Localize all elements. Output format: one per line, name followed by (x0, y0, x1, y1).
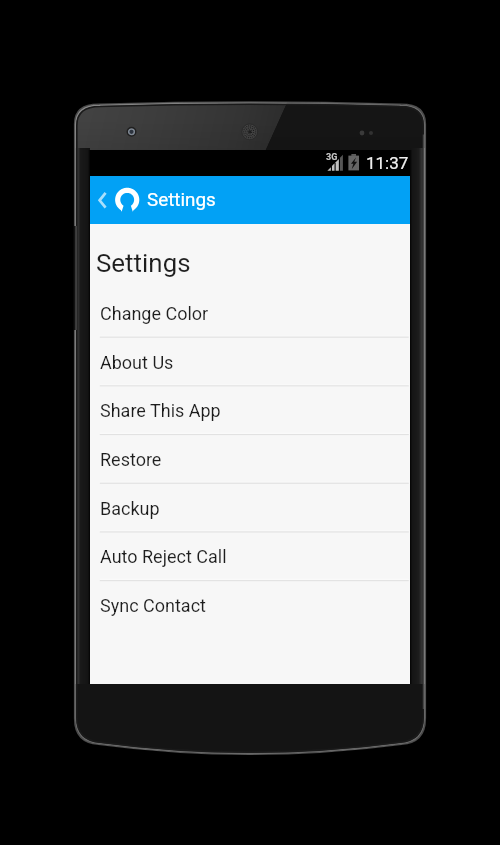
staticText: Share This App (100, 400, 221, 421)
staticText: Auto Reject Call (100, 546, 227, 567)
button[interactable]: About Us (90, 337, 410, 386)
button[interactable]: Restore (90, 434, 410, 483)
staticText: Settings (96, 248, 191, 278)
staticText: About Us (100, 352, 174, 373)
button[interactable]: Change Color (90, 288, 410, 337)
button[interactable]: Share This App (90, 385, 410, 434)
staticText: Backup (100, 498, 160, 519)
staticText: 11:37 (366, 153, 409, 173)
button[interactable]: Navigate up (92, 176, 112, 224)
staticText: 3G (326, 152, 338, 163)
staticText: Change Color (100, 303, 209, 324)
staticText: Restore (100, 449, 162, 470)
staticText: Sync Contact (100, 595, 206, 616)
button[interactable]: Sync Contact (90, 580, 410, 629)
button[interactable]: Backup (90, 483, 410, 532)
button[interactable]: Auto Reject Call (90, 531, 410, 580)
staticText: Settings (147, 189, 216, 211)
